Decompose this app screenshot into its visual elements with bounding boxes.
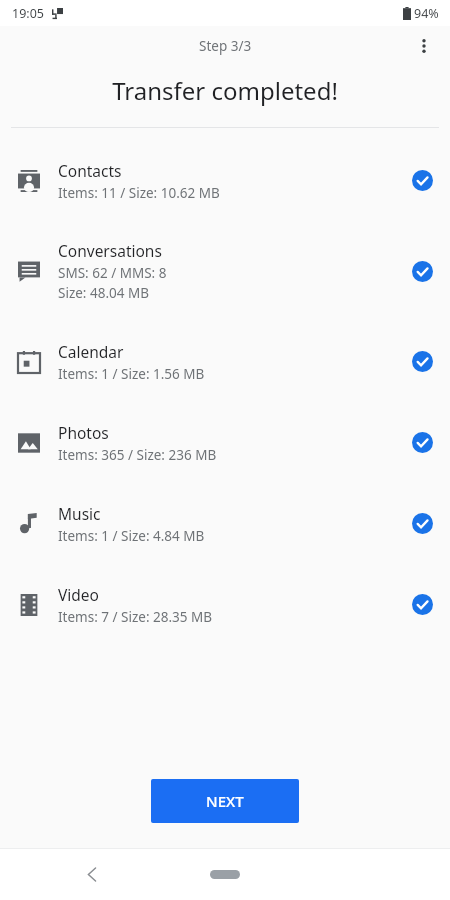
staticText: Items: 1 / Size: 1.56 MB (58, 365, 205, 383)
staticText: Items: 1 / Size: 4.84 MB (58, 527, 205, 545)
button[interactable]: NEXT (151, 779, 299, 823)
staticText: Items: 11 / Size: 10.62 MB (58, 184, 220, 202)
staticText: 94% (414, 5, 439, 22)
button[interactable]: Back (70, 852, 114, 896)
staticText: Calendar (58, 341, 124, 362)
button[interactable]: Video (0, 564, 450, 645)
button[interactable]: Calendar (0, 321, 450, 402)
staticText: 19:05 (12, 5, 44, 22)
button[interactable]: Conversations (0, 221, 450, 321)
staticText: Contacts (58, 160, 122, 181)
button[interactable]: Music (0, 483, 450, 564)
button[interactable]: More options (404, 26, 444, 66)
staticText: Transfer completed! (112, 74, 338, 107)
staticText: Size: 48.04 MB (58, 284, 150, 302)
staticText: Items: 365 / Size: 236 MB (58, 446, 217, 464)
button[interactable]: Contacts (0, 140, 450, 221)
staticText: Photos (58, 422, 109, 443)
button[interactable]: Photos (0, 402, 450, 483)
staticText: Music (58, 503, 101, 524)
staticText: Video (58, 584, 99, 605)
button[interactable]: Home (195, 859, 255, 889)
staticText: SMS: 62 / MMS: 8 (58, 264, 167, 282)
staticText: Items: 7 / Size: 28.35 MB (58, 608, 213, 626)
staticText: Step 3/3 (199, 37, 252, 55)
staticText: NEXT (206, 791, 244, 811)
staticText: Conversations (58, 240, 162, 261)
